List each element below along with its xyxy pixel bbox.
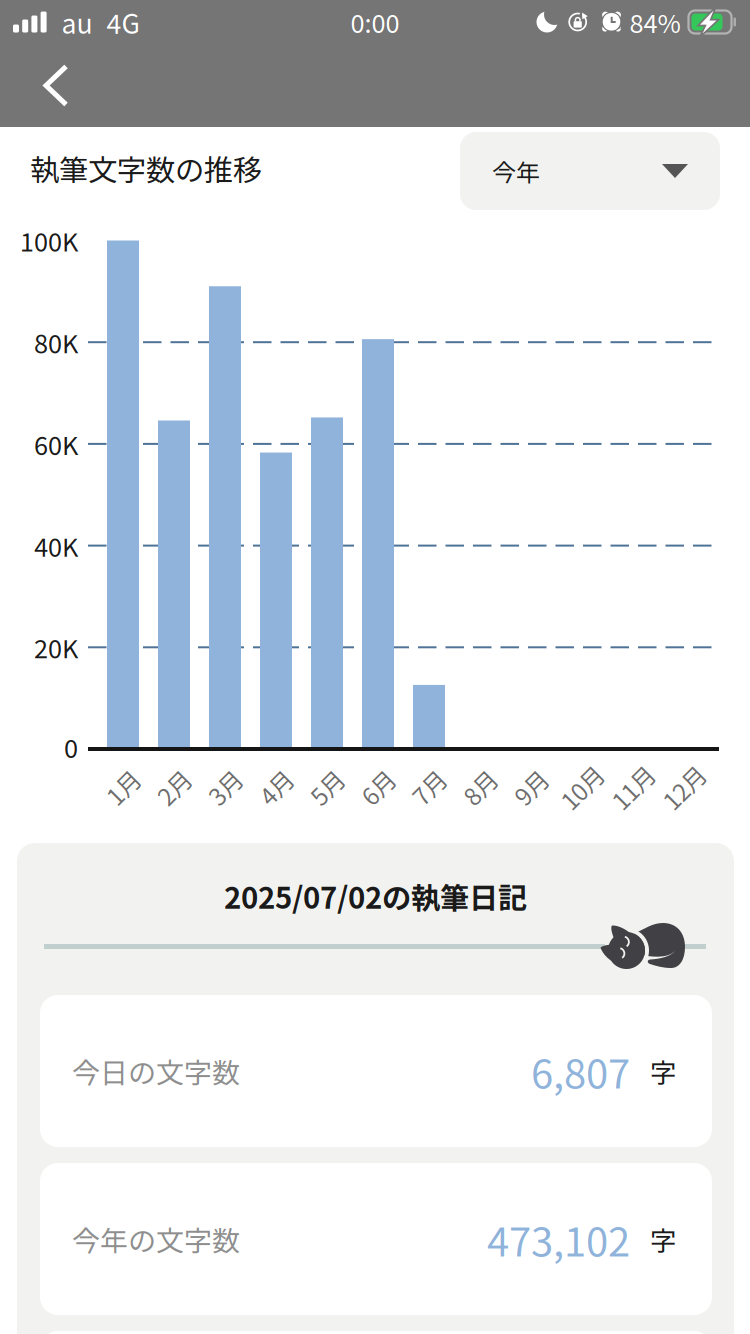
- staticText: 6,807: [531, 1042, 630, 1100]
- staticText: 11月: [608, 770, 658, 804]
- staticText: au: [62, 3, 93, 41]
- staticText: 5月: [308, 770, 345, 804]
- staticText: 10月: [557, 770, 607, 804]
- staticText: 20K: [34, 629, 78, 666]
- staticText: 4月: [257, 770, 294, 804]
- staticText: 80K: [34, 324, 78, 361]
- staticText: 執筆文字数の推移: [30, 147, 262, 189]
- staticText: 字: [650, 1220, 677, 1258]
- staticText: 今年: [492, 154, 540, 188]
- button[interactable]: 今日の文字数: [40, 995, 712, 1147]
- staticText: 2月: [155, 770, 192, 804]
- staticText: 100K: [20, 222, 78, 259]
- staticText: 1月: [104, 770, 141, 804]
- staticText: 60K: [34, 426, 78, 462]
- staticText: 473,102: [487, 1210, 630, 1268]
- staticText: 字: [650, 1052, 677, 1090]
- staticText: 6月: [359, 770, 396, 804]
- staticText: 84%: [629, 4, 680, 40]
- button[interactable]: 今年の文字数: [40, 1163, 712, 1315]
- staticText: 3月: [206, 770, 243, 804]
- staticText: 4G: [107, 3, 140, 41]
- staticText: 9月: [512, 770, 549, 804]
- staticText: 2025/07/02の執筆日記: [224, 875, 527, 917]
- staticText: 8月: [461, 770, 498, 804]
- staticText: 0:00: [350, 4, 399, 40]
- staticText: 今年の文字数: [72, 1219, 240, 1259]
- staticText: 今日の文字数: [72, 1051, 240, 1091]
- staticText: 40K: [34, 527, 78, 564]
- staticText: 7月: [410, 770, 447, 804]
- button[interactable]: 今年: [460, 132, 720, 210]
- button[interactable]: Back: [22, 45, 90, 125]
- staticText: 0: [64, 729, 78, 765]
- staticText: 12月: [659, 770, 709, 804]
